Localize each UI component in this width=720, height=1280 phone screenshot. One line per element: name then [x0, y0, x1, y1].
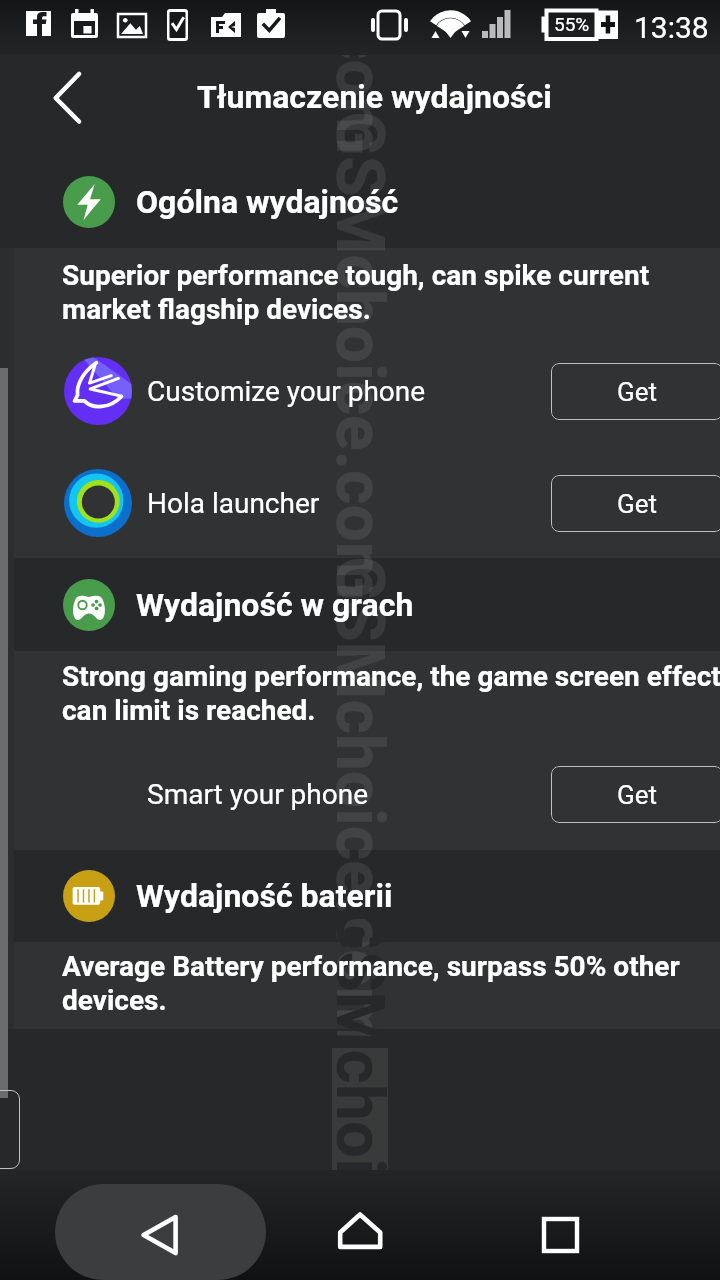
button[interactable]: Back — [128, 1205, 192, 1269]
staticText: GSMchoice.com — [321, 0, 398, 270]
staticText: Superior performance tough, can spike cu… — [62, 259, 650, 292]
button[interactable]: Wydajność baterii — [0, 849, 720, 942]
staticText: Tłumaczenie wydajności — [197, 78, 552, 116]
button[interactable]: Back — [55, 1184, 266, 1280]
button[interactable]: Get — [551, 475, 720, 532]
staticText: GSMchoice.com — [321, 440, 398, 1160]
button[interactable]: Get — [551, 766, 720, 823]
staticText: can limit is reached. — [62, 694, 316, 727]
staticText: Wydajność w grach — [136, 586, 414, 624]
button[interactable]: Recent apps — [528, 1203, 592, 1267]
staticText: Wydajność baterii — [136, 877, 393, 915]
staticText: Get — [617, 377, 658, 407]
staticText: 13:38 — [634, 10, 709, 45]
staticText: Customize your phone — [147, 375, 426, 408]
staticText: 55% — [554, 13, 590, 35]
staticText: Strong gaming performance, the game scre… — [62, 660, 720, 693]
staticText: devices. — [62, 984, 167, 1017]
button[interactable]: Get — [551, 363, 720, 420]
button[interactable]: Wydajność w grach — [0, 558, 720, 651]
button[interactable]: Home — [328, 1210, 392, 1274]
staticText: Get — [617, 780, 658, 810]
staticText: Average Battery performance, surpass 50%… — [62, 950, 680, 983]
staticText: GSMchoice.com — [321, 0, 398, 715]
staticText: market flagship devices. — [62, 293, 371, 326]
staticText: Get — [617, 489, 658, 519]
staticText: Smart your phone — [147, 778, 368, 811]
button[interactable]: Back — [40, 68, 100, 128]
staticText: Hola launcher — [147, 487, 320, 520]
staticText: GSMchoice.com — [321, 790, 398, 1280]
button[interactable]: Ogólna wydajność — [0, 155, 720, 248]
staticText: Ogólna wydajność — [136, 183, 399, 221]
